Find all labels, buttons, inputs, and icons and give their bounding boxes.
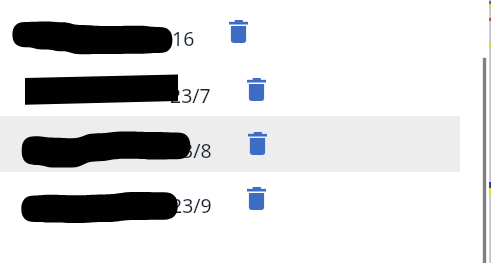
button[interactable]: Delete entry bbox=[248, 132, 267, 155]
button[interactable]: 23/7 bbox=[0, 58, 491, 116]
staticText: 3/8 bbox=[182, 137, 212, 164]
staticText: 16 bbox=[172, 25, 195, 52]
staticText: 23/9 bbox=[171, 192, 212, 219]
button[interactable]: Delete entry bbox=[247, 187, 266, 210]
button[interactable]: 16 bbox=[0, 0, 491, 58]
button[interactable]: 3/8 bbox=[0, 116, 491, 172]
button[interactable]: Delete entry bbox=[229, 20, 248, 43]
button[interactable]: Delete entry bbox=[247, 78, 266, 101]
staticText: 23/7 bbox=[170, 82, 211, 109]
button[interactable]: 23/9 bbox=[0, 172, 491, 230]
